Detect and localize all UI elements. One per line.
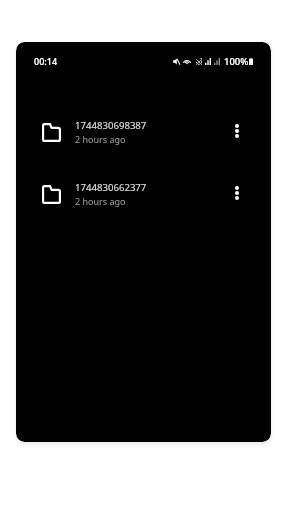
button[interactable]: More options for 1744830662377 — [222, 172, 252, 216]
staticText: 100% — [224, 55, 249, 68]
staticText: 2 hours ago — [75, 133, 126, 145]
staticText: 1744830698387 — [75, 119, 147, 132]
button[interactable]: More options for 1744830698387 — [222, 110, 252, 154]
staticText: 00:14 — [34, 55, 58, 67]
button[interactable]: 1744830662377 — [16, 163, 271, 225]
button[interactable]: 1744830698387 — [16, 101, 271, 163]
staticText: 1744830662377 — [75, 181, 147, 194]
staticText: 2 hours ago — [75, 195, 126, 207]
